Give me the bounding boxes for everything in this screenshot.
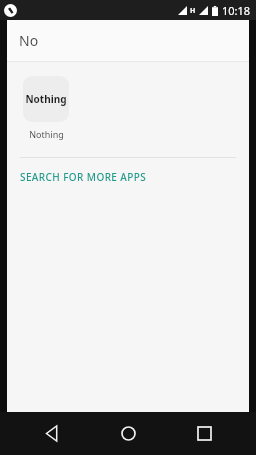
button[interactable]: Recent apps bbox=[180, 412, 228, 455]
staticText: Nothing bbox=[29, 128, 64, 140]
button[interactable]: Nothing bbox=[18, 76, 74, 140]
staticText: SEARCH FOR MORE APPS bbox=[20, 170, 147, 184]
button[interactable]: Home bbox=[104, 412, 152, 455]
staticText: Nothing bbox=[25, 92, 67, 106]
staticText: H bbox=[190, 6, 196, 16]
button[interactable]: Back bbox=[28, 412, 76, 455]
staticText: 10:18 bbox=[222, 3, 251, 18]
button[interactable]: SEARCH FOR MORE APPS bbox=[7, 158, 249, 196]
staticText: No bbox=[19, 31, 39, 50]
